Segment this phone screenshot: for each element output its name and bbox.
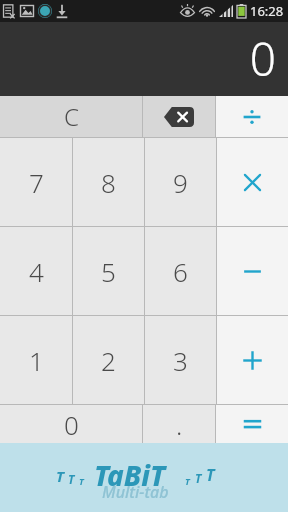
button[interactable]: .	[143, 405, 215, 443]
staticText: 0	[64, 407, 79, 442]
button[interactable]: Equals	[216, 405, 288, 443]
other: Plus	[242, 350, 263, 371]
button[interactable]: Backspace	[143, 96, 215, 137]
button[interactable]: 2	[73, 316, 144, 404]
button[interactable]: 0	[0, 405, 142, 443]
staticText: 7	[29, 165, 44, 200]
staticText: 2	[101, 343, 116, 378]
button[interactable]: 1	[0, 316, 72, 404]
staticText: C	[64, 100, 79, 133]
button[interactable]: 5	[73, 227, 144, 315]
staticText: 0	[249, 27, 276, 90]
staticText: .	[176, 407, 183, 442]
staticText: T	[195, 470, 202, 486]
button[interactable]: Multiply	[217, 138, 288, 226]
button[interactable]: 3	[145, 316, 216, 404]
staticText: 5	[101, 254, 116, 289]
staticText: Multi-tab	[102, 481, 169, 503]
button[interactable]: 6	[145, 227, 216, 315]
staticText: 3	[173, 343, 188, 378]
button[interactable]: 4	[0, 227, 72, 315]
button[interactable]: 9	[145, 138, 216, 226]
other: Multiply	[243, 173, 262, 192]
staticText: 1	[29, 343, 44, 378]
button[interactable]: 8	[73, 138, 144, 226]
button[interactable]: Divide	[216, 96, 288, 137]
other: Minus	[243, 262, 262, 281]
button[interactable]: C	[0, 96, 142, 137]
staticText: T	[185, 475, 190, 487]
staticText: T	[68, 471, 75, 487]
button[interactable]: Plus	[217, 316, 288, 404]
staticText: TaBiT	[94, 456, 166, 494]
button[interactable]: Tabit Multi-tab advertisement	[0, 443, 288, 512]
staticText: 8	[101, 165, 116, 200]
button[interactable]: 7	[0, 138, 72, 226]
staticText: 4	[29, 254, 44, 289]
button[interactable]: Minus	[217, 227, 288, 315]
staticText: T	[79, 475, 84, 487]
staticText: 16:28	[250, 2, 284, 20]
staticText: 6	[173, 254, 188, 289]
staticText: T	[206, 464, 215, 486]
staticText: T	[56, 466, 64, 486]
staticText: 9	[173, 165, 188, 200]
